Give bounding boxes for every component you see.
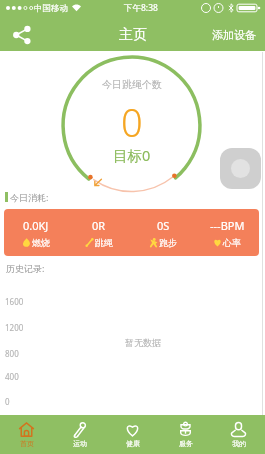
staticText: 服务 — [179, 439, 193, 448]
button[interactable]: 0.0KJ — [4, 209, 67, 256]
staticText: 跑步 — [159, 237, 177, 248]
staticText: 运动 — [73, 439, 87, 448]
button[interactable]: Share — [6, 19, 38, 51]
staticText: 目标0 — [113, 145, 151, 165]
staticText: 主页 — [119, 26, 147, 44]
staticText: 历史记录: — [6, 262, 45, 274]
staticText: 我的 — [232, 439, 246, 448]
staticText: 0 — [5, 396, 10, 407]
staticText: 400 — [5, 371, 19, 382]
staticText: 今日消耗: — [10, 191, 49, 203]
staticText: 0R — [92, 218, 106, 233]
button[interactable]: 0R — [67, 209, 131, 256]
button[interactable]: 添加设备 — [210, 24, 258, 46]
staticText: 心率 — [223, 237, 241, 248]
staticText: 健康 — [126, 439, 140, 448]
staticText: 燃烧 — [32, 237, 50, 248]
staticText: 1600 — [5, 296, 24, 307]
button[interactable]: 我的 — [212, 415, 265, 454]
button[interactable]: 首页 — [0, 415, 53, 454]
staticText: 800 — [5, 348, 19, 359]
button[interactable]: 健康 — [106, 415, 159, 454]
staticText: 首页 — [20, 439, 34, 448]
staticText: 添加设备 — [212, 28, 256, 42]
staticText: ---BPM — [210, 218, 245, 233]
staticText: 0S — [157, 218, 170, 233]
staticText: 0.0KJ — [23, 218, 49, 233]
button[interactable]: 运动 — [53, 415, 106, 454]
staticText: 中国移动 — [34, 3, 68, 14]
button[interactable]: ---BPM — [195, 209, 259, 256]
button[interactable]: 0S — [131, 209, 195, 256]
staticText: 下午8:38 — [124, 2, 158, 14]
staticText: 暂无数据 — [125, 337, 161, 348]
staticText: 今日跳绳个数 — [102, 78, 162, 91]
button[interactable]: 服务 — [159, 415, 212, 454]
button[interactable]: Assistive touch — [220, 148, 261, 189]
staticText: 跳绳 — [95, 237, 113, 248]
staticText: 1200 — [5, 322, 24, 333]
staticText: 0 — [121, 96, 143, 148]
